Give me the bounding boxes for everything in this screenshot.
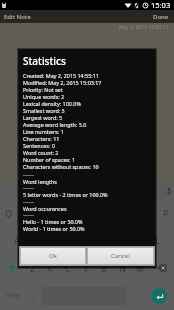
staticText: Word lengths <box>23 178 57 185</box>
button[interactable]: L <box>148 226 166 254</box>
staticText: Number of spaces: 1 <box>23 156 76 163</box>
button[interactable]: D <box>42 226 59 254</box>
staticText: . <box>135 291 137 301</box>
button[interactable]: Enter <box>151 288 167 304</box>
button[interactable]: ?123 <box>0 282 24 310</box>
staticText: Smallest word: 5 <box>23 107 65 114</box>
staticText: V <box>83 262 89 274</box>
staticText: Done <box>153 13 169 21</box>
button[interactable]: O <box>140 199 157 226</box>
button[interactable]: Backspace <box>149 254 174 282</box>
staticText: Edit Note <box>4 13 31 21</box>
button[interactable]: K <box>130 226 148 254</box>
staticText: Created: May 2, 2015 14:55:11 <box>23 72 99 79</box>
staticText: P <box>163 207 169 219</box>
button[interactable]: X <box>41 254 59 282</box>
staticText: % <box>72 229 75 234</box>
button[interactable]: B <box>95 254 113 282</box>
button[interactable]: M <box>131 254 149 282</box>
button[interactable]: F <box>59 226 76 254</box>
staticText: Hello - 1 times or 50.0% <box>23 218 83 225</box>
staticText: C <box>65 262 71 274</box>
staticText: Word count: 2 <box>23 149 59 156</box>
button[interactable]: Z <box>24 254 41 282</box>
staticText: B <box>101 262 107 274</box>
staticText: May 2, 2015 14:55:11 <box>119 24 169 31</box>
button[interactable]: Ok <box>21 248 85 264</box>
button[interactable]: Q <box>0 199 18 226</box>
button[interactable]: A <box>8 226 25 254</box>
staticText: A <box>14 234 20 246</box>
button[interactable]: N <box>113 254 131 282</box>
staticText: Z <box>30 262 36 274</box>
staticText: E <box>42 207 48 219</box>
button[interactable]: W <box>18 199 36 226</box>
staticText: Statistics <box>23 54 66 68</box>
staticText: Modified: May 2, 2015 15:03:17 <box>23 79 102 86</box>
staticText: ?123 <box>6 292 19 300</box>
staticText: Q <box>5 207 13 219</box>
staticText: Characters: 11 <box>23 135 60 142</box>
button[interactable]: Edit Note <box>0 11 35 23</box>
staticText: L <box>155 234 160 246</box>
staticText: World - 1 times or 50.0% <box>23 225 85 232</box>
button[interactable]: Cancel <box>88 248 153 264</box>
staticText: 15:03 <box>151 0 171 10</box>
button[interactable]: T <box>72 199 89 226</box>
staticText: Characters without spaces: 10 <box>23 163 99 170</box>
staticText: 2 <box>32 202 35 207</box>
staticText: , <box>32 291 34 301</box>
staticText: Sentences: 0 <box>23 142 55 149</box>
staticText: Priority: Not set <box>23 86 63 93</box>
staticText: Line numbers: 1 <box>23 128 64 135</box>
staticText: N <box>119 262 126 274</box>
button[interactable]: R <box>54 199 72 226</box>
staticText: Largest word: 5 <box>23 114 63 121</box>
staticText: Average word length: 5.0 <box>23 121 87 128</box>
staticText: Lexical density: 100.0% <box>23 100 81 107</box>
button[interactable]: H <box>94 226 112 254</box>
staticText: $ <box>55 229 58 234</box>
staticText: Cancel <box>111 252 130 260</box>
staticText: @ <box>20 229 24 234</box>
button[interactable]: S <box>25 226 42 254</box>
button[interactable]: G <box>76 226 94 254</box>
button[interactable]: P <box>157 199 174 226</box>
button[interactable]: Shift <box>0 254 24 282</box>
button[interactable]: V <box>77 254 95 282</box>
button[interactable]: J <box>112 226 130 254</box>
staticText: M <box>136 262 145 274</box>
button[interactable]: C <box>59 254 77 282</box>
staticText: Word occurences <box>23 205 67 212</box>
button[interactable]: Done <box>149 11 174 23</box>
button[interactable]: E <box>36 199 54 226</box>
staticText: Ok <box>49 252 57 260</box>
staticText: 5 letter words - 2 times or 100.0% <box>23 191 108 198</box>
